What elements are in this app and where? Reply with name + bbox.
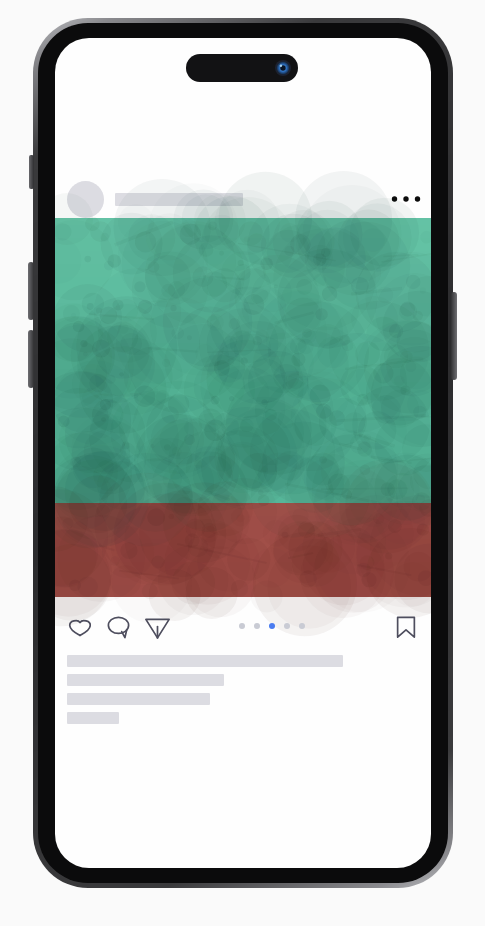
button[interactable]: Save <box>386 607 425 646</box>
button[interactable]: More options <box>55 180 431 218</box>
other: Power <box>451 292 457 380</box>
button[interactable]: Like <box>60 607 99 646</box>
other: Volume down <box>28 330 34 388</box>
button[interactable] <box>55 218 431 597</box>
button[interactable]: Share <box>138 607 177 646</box>
button[interactable]: More options <box>384 180 428 218</box>
other: Volume up <box>28 262 34 320</box>
button[interactable]: Comment <box>99 607 138 646</box>
other: Silent switch <box>29 155 34 189</box>
